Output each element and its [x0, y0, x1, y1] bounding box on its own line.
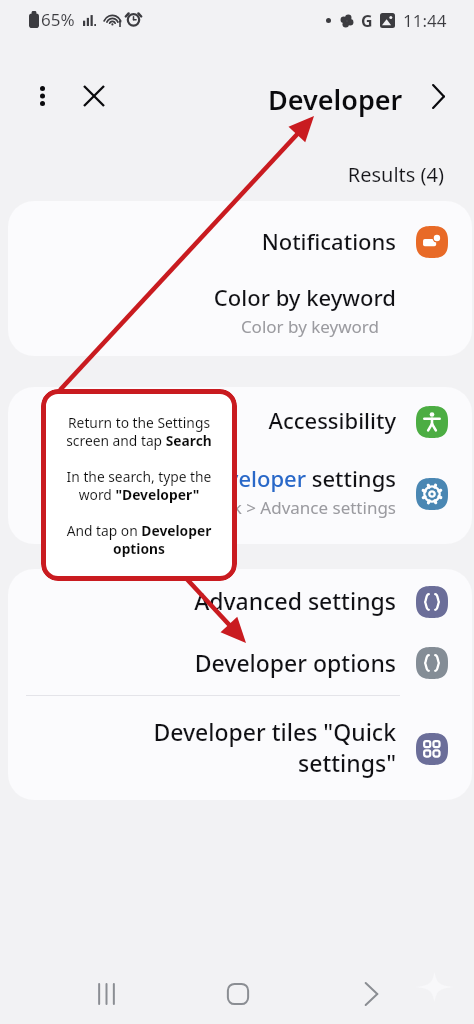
staticText: Return to the Settings screen and tap Se… [53, 413, 225, 450]
staticText: Developer tiles "Quick settings" [153, 716, 396, 779]
button[interactable]: Accessibility [8, 387, 472, 453]
button[interactable]: Notifications [8, 201, 472, 281]
button[interactable]: Developer tiles "Quick settings" [8, 697, 472, 797]
staticText: Tools > Network > Advance settings [113, 496, 396, 519]
staticText: Color by keyword [213, 282, 396, 312]
button[interactable]: Color by keyword [8, 276, 472, 343]
staticText: Developer [268, 81, 403, 118]
button[interactable]: Recents [80, 968, 132, 1020]
button[interactable]: Developer settings [8, 453, 472, 528]
staticText: Advanced settings [194, 585, 396, 616]
button[interactable]: Close [70, 72, 118, 120]
button[interactable]: Next [414, 72, 462, 120]
button[interactable]: More options [18, 72, 66, 120]
staticText: Color by keyword [240, 315, 379, 338]
staticText: Developer options [194, 647, 396, 678]
staticText: Notifications [261, 226, 396, 256]
staticText: Accessibility [268, 405, 396, 435]
button[interactable]: Back [345, 968, 397, 1020]
staticText: And tap on Developer options [53, 521, 225, 558]
staticText: 11:44 [403, 9, 447, 32]
button[interactable]: Advanced settings [8, 569, 472, 631]
button[interactable]: Home [212, 968, 264, 1020]
staticText: 65% [41, 8, 75, 31]
staticText: G [361, 10, 373, 32]
button[interactable]: Developer options [8, 631, 472, 694]
staticText: In the search, type the word "Developer" [53, 467, 225, 504]
staticText: Results (4) [0, 161, 444, 188]
staticText: Developer settings [198, 463, 396, 493]
